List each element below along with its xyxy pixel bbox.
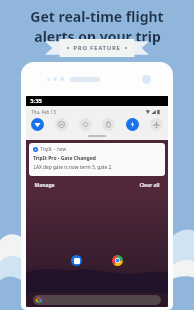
staticText: TripIt bbox=[40, 146, 52, 152]
button[interactable]: Clear all bbox=[137, 180, 162, 191]
button[interactable]: Battery saver bbox=[102, 118, 115, 131]
button[interactable]: Wi-Fi bbox=[31, 118, 44, 131]
button[interactable]: TripIt bbox=[29, 143, 165, 176]
button[interactable]: Auto rotate bbox=[79, 118, 92, 131]
staticText: Thu, Feb 13 bbox=[31, 109, 56, 115]
staticText: 3:35 bbox=[30, 97, 42, 105]
button[interactable]: Messages bbox=[71, 255, 82, 266]
button[interactable] bbox=[33, 295, 161, 305]
button[interactable]: Do not disturb bbox=[55, 118, 68, 131]
button[interactable]: Airplane mode bbox=[150, 118, 163, 131]
staticText: Get real-time flight bbox=[30, 7, 164, 26]
button[interactable]: Flashlight bbox=[126, 118, 139, 131]
button[interactable]: Chrome bbox=[112, 255, 123, 266]
staticText: LAX dep gate is now term 3, gate 2. bbox=[33, 164, 113, 171]
staticText: Manage bbox=[34, 182, 55, 189]
staticText: PRO FEATURE bbox=[73, 44, 121, 52]
staticText: alerts on your trip bbox=[34, 27, 161, 46]
staticText: now bbox=[57, 146, 66, 152]
button[interactable]: Manage bbox=[32, 180, 57, 191]
staticText: TripIt Pro - Gate Changed bbox=[33, 155, 96, 162]
staticText: Clear all bbox=[139, 182, 160, 189]
